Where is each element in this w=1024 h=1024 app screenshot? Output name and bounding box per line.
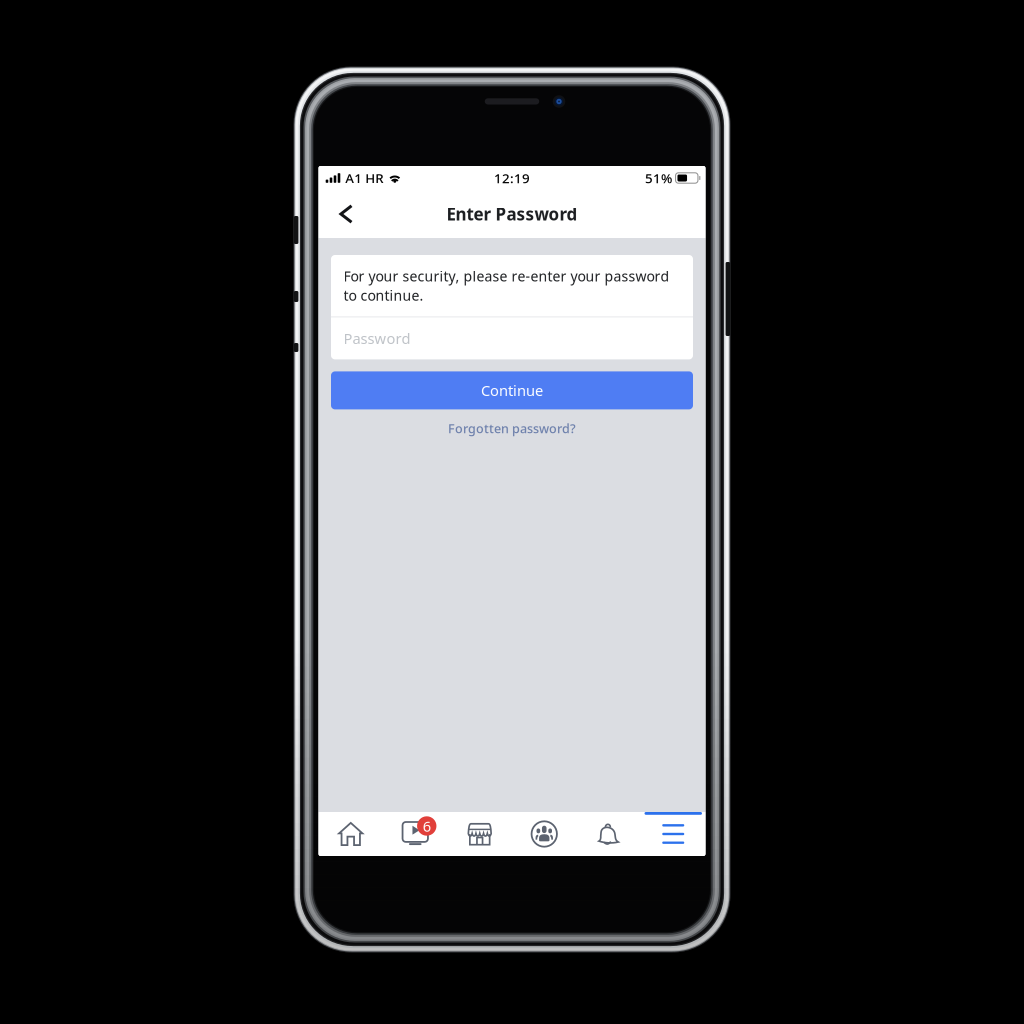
staticText: 6 [423, 816, 431, 836]
button[interactable]: Continue [331, 371, 693, 409]
staticText: A1 HR [345, 169, 383, 187]
staticText: Password [343, 328, 410, 348]
button[interactable]: Home [318, 812, 383, 856]
button[interactable]: Video [383, 812, 447, 856]
staticText: Forgotten password? [448, 420, 576, 437]
button[interactable]: Notifications [576, 812, 641, 856]
staticText: 12:19 [494, 169, 530, 187]
staticText: Enter Password [446, 202, 577, 226]
button[interactable]: Back [318, 192, 368, 236]
staticText: For your security, please re-enter your … [343, 267, 669, 305]
staticText: 51% [645, 169, 672, 187]
button[interactable]: Password [331, 317, 693, 359]
button[interactable]: Groups [512, 812, 576, 856]
button[interactable]: Marketplace [447, 812, 512, 856]
staticText: Continue [481, 380, 543, 400]
button[interactable]: Menu [641, 812, 705, 856]
button[interactable]: Forgotten password? [331, 419, 693, 437]
